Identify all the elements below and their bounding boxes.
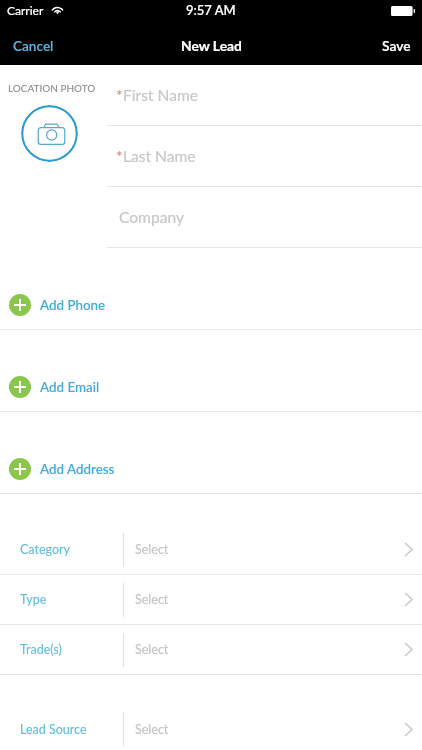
staticText: Last Name [123,147,196,166]
button[interactable]: Add location photo [21,105,78,162]
button[interactable]: Category [0,525,422,574]
button[interactable]: Trade(s) [0,625,422,674]
staticText: Lead Source [20,722,123,737]
button[interactable]: Add Address [0,412,422,493]
button[interactable]: Type [0,575,422,624]
button[interactable]: Company [107,187,422,247]
staticText: Category [20,542,123,557]
staticText: Cancel [13,38,54,54]
staticText: Select [135,642,169,657]
button[interactable]: * [107,65,422,125]
button[interactable]: Add Phone [0,248,422,329]
staticText: * [116,147,123,166]
staticText: Select [135,722,169,737]
staticText: Add Address [40,461,115,477]
button[interactable]: Cancel [0,30,67,65]
staticText: Add Phone [40,297,106,313]
button[interactable]: * [107,126,422,186]
staticText: Trade(s) [20,642,123,657]
button[interactable]: Lead Source [0,708,422,750]
staticText: First Name [123,86,198,105]
staticText: Select [135,592,169,607]
button[interactable]: Save [369,29,422,65]
staticText: Type [20,592,123,607]
staticText: New Lead [181,37,242,54]
staticText: Select [135,542,169,557]
staticText: Add Email [40,379,100,395]
staticText: Carrier [7,3,44,17]
button[interactable]: Add Email [0,330,422,411]
staticText: * [116,86,123,105]
staticText: LOCATION PHOTO [8,82,96,94]
staticText: Save [382,37,411,54]
staticText: Company [119,208,184,227]
staticText: 9:57 AM [186,2,236,18]
